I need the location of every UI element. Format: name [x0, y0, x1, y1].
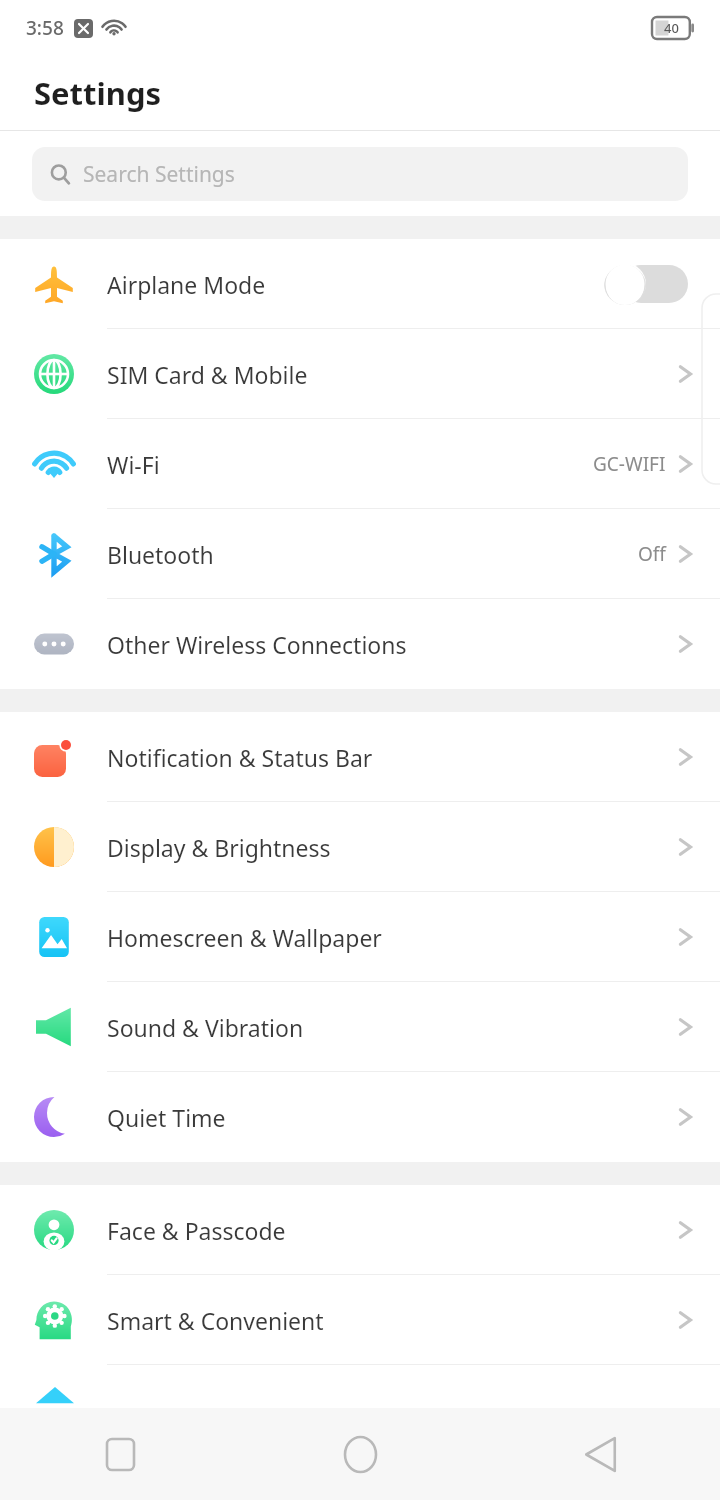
button[interactable]: Quiet Time	[0, 1072, 720, 1162]
staticText: Display & Brightness	[107, 832, 678, 863]
button[interactable]: Search Settings	[32, 147, 688, 201]
staticText: SIM Card & Mobile	[107, 359, 678, 390]
button[interactable]: Smart & Convenient	[0, 1275, 720, 1365]
button[interactable]: Notification & Status Bar	[0, 712, 720, 802]
staticText: GC-WIFI	[593, 451, 666, 477]
staticText: Homescreen & Wallpaper	[107, 922, 678, 953]
button[interactable]: Other Wireless Connections	[0, 599, 720, 689]
staticText: Face & Passcode	[107, 1215, 678, 1246]
button[interactable]: SIM Card & Mobile	[0, 329, 720, 419]
staticText: Smart & Convenient	[107, 1305, 678, 1336]
staticText: Wi-Fi	[107, 449, 593, 480]
button[interactable]: Display & Brightness	[0, 802, 720, 892]
button[interactable]: Recent apps	[0, 1408, 240, 1500]
button[interactable]: Back	[480, 1408, 720, 1500]
staticText: Off	[638, 541, 666, 567]
button[interactable]: Homescreen & Wallpaper	[0, 892, 720, 982]
staticText: 40	[664, 19, 679, 37]
button[interactable]: Home	[240, 1408, 480, 1500]
staticText: Quiet Time	[107, 1102, 678, 1133]
button[interactable]: Airplane Mode	[0, 239, 720, 329]
staticText: Bluetooth	[107, 539, 638, 570]
staticText: Sound & Vibration	[107, 1012, 678, 1043]
button[interactable]: Bluetooth	[0, 509, 720, 599]
button[interactable]: Wi-Fi	[0, 419, 720, 509]
staticText: Search Settings	[83, 160, 235, 189]
button[interactable]: Airplane Mode toggle	[604, 262, 688, 306]
button[interactable]: Sound & Vibration	[0, 982, 720, 1072]
staticText: Airplane Mode	[107, 269, 604, 300]
button[interactable]: Face & Passcode	[0, 1185, 720, 1275]
staticText: Notification & Status Bar	[107, 742, 678, 773]
staticText: Settings	[34, 72, 162, 114]
staticText: 3:58	[26, 15, 64, 41]
staticText: Other Wireless Connections	[107, 629, 678, 660]
